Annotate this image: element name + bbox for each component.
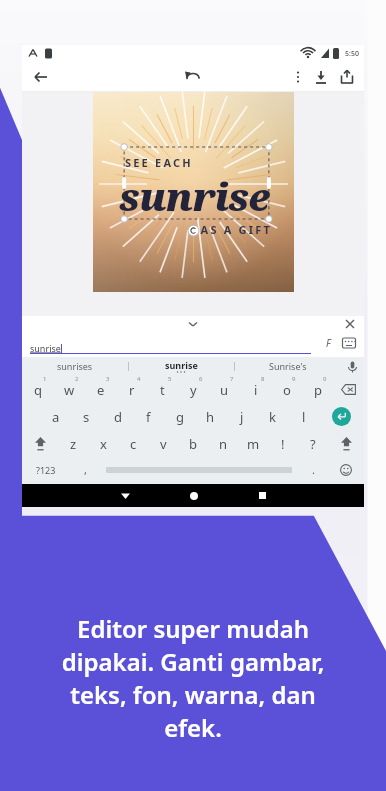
button[interactable]: p [302,376,333,403]
staticText: ! [281,435,285,453]
button[interactable]: Download [308,64,334,90]
button[interactable]: a [40,403,71,430]
staticText: v [160,435,167,453]
button[interactable]: d [102,403,133,430]
button[interactable]: q [22,376,54,403]
button[interactable]: Enter [319,403,364,430]
staticText: sunrise [119,170,269,222]
button[interactable]: e [85,376,116,403]
staticText: x [100,435,107,453]
staticText: i [254,381,258,399]
button[interactable]: l [288,403,319,430]
staticText: q [34,381,42,399]
staticText: F [326,336,331,350]
staticText: u [220,381,229,399]
staticText: l [302,408,306,426]
staticText: o [283,381,291,399]
button[interactable]: t [147,376,178,403]
button[interactable]: , [70,457,100,482]
button[interactable]: c [118,430,148,457]
button[interactable]: Backspace [333,376,364,403]
staticText: 4 [137,375,141,383]
button[interactable]: v [148,430,178,457]
button[interactable]: Sunrise's [235,357,340,375]
button[interactable]: Back [28,64,54,90]
staticText: c [130,435,137,453]
button[interactable]: Home [160,484,228,507]
staticText: f [146,408,151,426]
button[interactable]: sunrise [30,332,311,354]
button[interactable]: Emoji [328,457,364,482]
button[interactable]: SEE EACH [93,92,294,292]
staticText: efek. [22,711,364,744]
staticText: t [160,381,165,399]
button[interactable]: ! [268,430,298,457]
staticText: AS A GIFT [119,222,272,237]
staticText: d [114,408,122,426]
staticText: ? [310,435,316,453]
button[interactable]: j [226,403,257,430]
button[interactable]: sunrise [129,357,234,375]
staticText: n [219,435,228,453]
staticText: j [240,408,244,426]
button[interactable]: u [209,376,240,403]
button[interactable]: i [240,376,271,403]
button[interactable]: w [54,376,85,403]
button[interactable]: sunrises [22,357,128,375]
button[interactable]: ? [298,430,328,457]
staticText: 1 [43,375,47,383]
staticText: b [189,435,197,453]
button[interactable]: r [116,376,147,403]
button[interactable]: . [298,457,328,482]
button[interactable]: Font [319,334,337,352]
staticText: a [52,408,60,426]
staticText: Editor super mudah [22,612,364,645]
staticText: SEE EACH [125,155,193,170]
staticText: 5:50 [345,49,359,59]
button[interactable]: k [257,403,288,430]
staticText: dipakai. Ganti gambar, [22,645,364,678]
button[interactable]: f [133,403,164,430]
staticText: . [312,462,315,477]
staticText: sunrises [57,360,93,372]
button[interactable]: Voice input [340,357,364,375]
staticText: sunrise [165,359,198,371]
staticText: , [84,462,87,477]
staticText: y [190,381,197,399]
button[interactable]: ?123 [22,457,70,482]
button[interactable]: Space [100,457,298,482]
button[interactable]: Share [334,64,360,90]
staticText: 5 [168,375,172,383]
button[interactable]: Recents [228,484,296,507]
button[interactable]: Close [342,316,358,332]
staticText: Sunrise's [269,360,307,372]
button[interactable]: g [164,403,195,430]
button[interactable]: h [195,403,226,430]
staticText: h [206,408,215,426]
button[interactable]: n [208,430,238,457]
button[interactable]: Shift [22,430,58,457]
staticText: 8 [261,375,265,383]
button[interactable]: m [238,430,268,457]
button[interactable]: s [71,403,102,430]
button[interactable]: y [178,376,209,403]
staticText: ?123 [36,464,56,476]
button[interactable]: Back [91,484,160,507]
staticText: sunrise [30,342,61,354]
button[interactable]: x [88,430,118,457]
staticText: s [83,408,90,426]
staticText: 0 [323,375,327,383]
staticText: w [64,381,75,399]
staticText: 2 [75,375,79,383]
button[interactable]: z [58,430,88,457]
button[interactable]: b [178,430,208,457]
button[interactable]: Keyboard [340,334,358,352]
staticText: z [70,435,77,453]
staticText: 7 [230,375,234,383]
button[interactable]: Undo [180,64,206,90]
button[interactable]: Shift [328,430,364,457]
staticText: teks, fon, warna, dan [22,678,364,711]
button[interactable]: o [271,376,302,403]
button[interactable]: More options [288,67,308,87]
staticText: 6 [199,375,203,383]
